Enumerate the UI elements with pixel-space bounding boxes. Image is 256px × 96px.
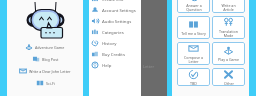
button[interactable]: History — [89, 37, 141, 48]
staticText: Audio Settings — [102, 18, 132, 24]
staticText: Sci-Fi — [46, 81, 55, 86]
button[interactable]: Write an Article — [212, 0, 245, 13]
staticText: Help — [102, 62, 112, 68]
button[interactable]: Audio Settings — [89, 15, 141, 26]
button[interactable]: Compose a Letter — [177, 42, 210, 65]
staticText: TBD — [190, 81, 197, 86]
staticText: Letter — [143, 64, 155, 69]
staticText: Buy Credits — [102, 51, 125, 57]
button[interactable]: Tell me a Story — [177, 16, 210, 39]
button[interactable]: TBD — [177, 68, 210, 86]
staticText: Adventure Game — [35, 45, 65, 50]
button[interactable]: Answer a Question — [177, 0, 210, 13]
button[interactable]: Other — [212, 68, 245, 86]
staticText: Categories — [102, 29, 124, 35]
staticText: Translation Mode — [219, 29, 238, 38]
button[interactable]: Buy Credits — [89, 48, 141, 59]
button[interactable]: Categories — [89, 26, 141, 37]
button[interactable]: Play a Game — [212, 42, 245, 65]
staticText: Play a Game — [218, 57, 239, 62]
staticText: Blog Post — [42, 57, 59, 62]
staticText: Create List — [102, 0, 124, 2]
staticText: Account Settings — [102, 7, 136, 13]
button[interactable]: Sci-Fi — [36, 77, 55, 89]
staticText: Tell me a Story — [181, 31, 206, 36]
button[interactable]: Create List — [89, 0, 141, 4]
button[interactable]: Adventure Game — [25, 41, 65, 53]
button[interactable]: Translation Mode — [212, 16, 245, 39]
staticText: Write an Article — [221, 3, 236, 12]
button[interactable]: Blog Post — [32, 53, 59, 65]
staticText: History — [102, 40, 117, 46]
button[interactable]: Help — [89, 59, 141, 70]
staticText: Answer a Question — [186, 3, 202, 12]
button[interactable]: Write a Dear John Letter — [19, 65, 71, 77]
staticText: Other — [224, 81, 234, 86]
staticText: Write a Dear John Letter — [29, 69, 71, 74]
staticText: Compose a Letter — [184, 55, 203, 64]
button[interactable]: Account Settings — [89, 4, 141, 15]
